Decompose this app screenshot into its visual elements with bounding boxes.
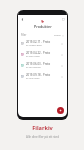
staticText: Sorter [54, 34, 61, 37]
button[interactable]: File options [60, 42, 64, 46]
button[interactable]: File options [60, 53, 64, 57]
staticText: av Lise Moen [26, 77, 40, 80]
button[interactable]: 2019-04-22 - Proto [18, 49, 67, 60]
staticText: av Kari Nilsen [26, 55, 40, 58]
button[interactable]: 2019-06-03 - Proto [18, 60, 67, 71]
staticText: Filarkiv [32, 124, 53, 132]
button[interactable]: Add file [57, 107, 64, 114]
button[interactable]: 2019-02-11 - Proto [18, 38, 67, 49]
staticText: av Anders Berg [26, 44, 42, 47]
staticText: Filer [21, 33, 27, 37]
button[interactable]: 2019-09-18 - Proto [18, 71, 67, 82]
button[interactable]: Back [19, 16, 26, 23]
button[interactable]: File options [60, 64, 64, 68]
button[interactable]: File options [60, 75, 64, 79]
button[interactable]: More options [60, 16, 67, 23]
staticText: 2019-02-11 - Proto [26, 40, 51, 44]
staticText: 2019-04-22 - Proto [26, 51, 51, 55]
button[interactable]: Sorter [54, 34, 64, 37]
staticText: Produkter [34, 24, 52, 29]
staticText: 2019-06-03 - Proto [26, 62, 51, 66]
staticText: av Ola Hansen [26, 66, 41, 69]
staticText: 2019-09-18 - Proto [26, 73, 51, 77]
staticText: Alle dine filer på ett sted [26, 135, 59, 139]
